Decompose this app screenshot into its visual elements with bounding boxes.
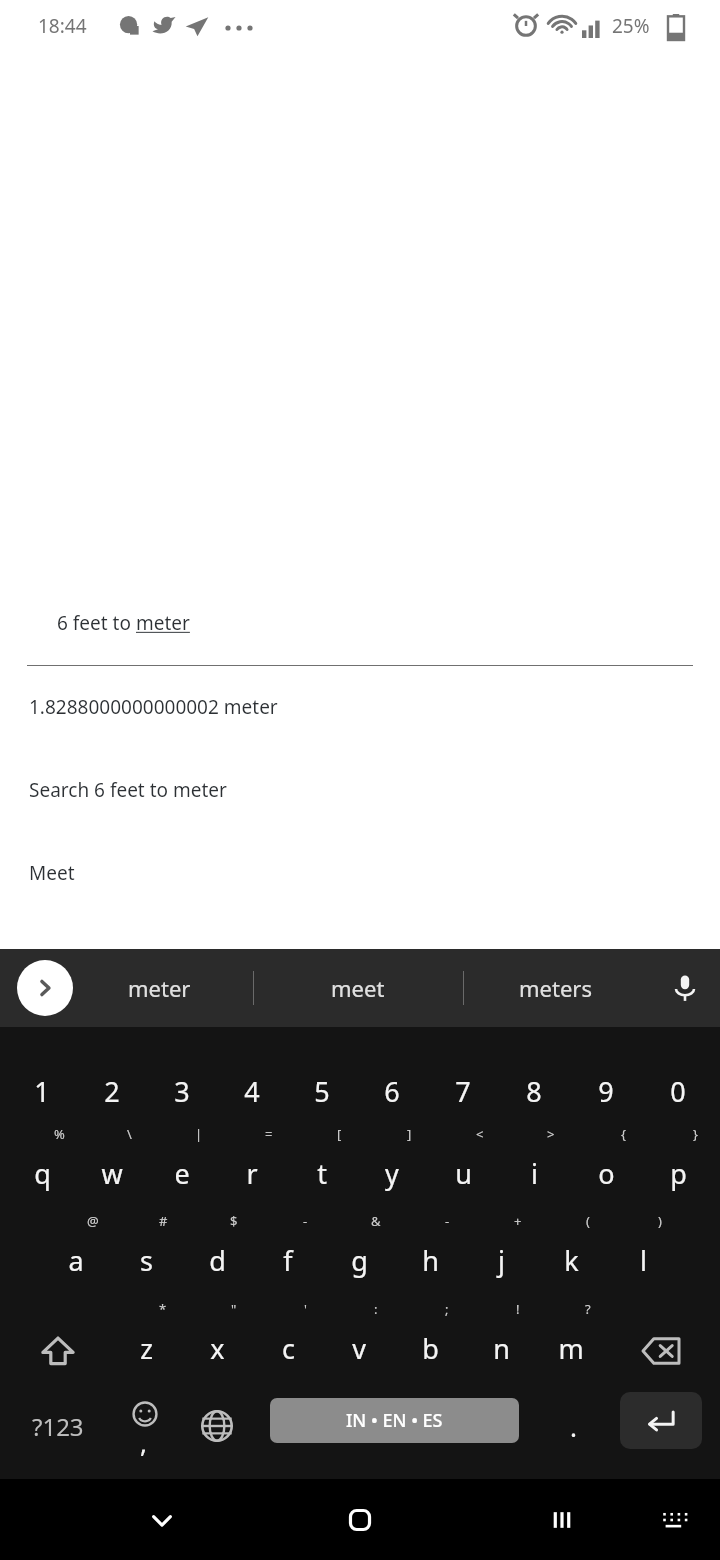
staticText: ] xyxy=(407,1125,412,1143)
button[interactable]: Keyboard switcher xyxy=(634,1479,714,1560)
button[interactable]: n xyxy=(466,1300,536,1384)
staticText: j xyxy=(498,1242,505,1279)
staticText: 1 xyxy=(34,1073,50,1110)
staticText: 2 xyxy=(104,1073,120,1110)
button[interactable]: 1.8288000000000002 meter xyxy=(29,694,278,720)
button[interactable]: m xyxy=(536,1300,606,1384)
button[interactable]: l xyxy=(608,1212,678,1296)
staticText: b xyxy=(422,1330,439,1367)
button[interactable]: meters xyxy=(470,949,640,1027)
staticText: z xyxy=(140,1330,153,1367)
button[interactable]: 3 xyxy=(147,1043,217,1127)
button[interactable]: Change language xyxy=(184,1393,250,1459)
staticText: ?123 xyxy=(32,1410,84,1443)
button[interactable]: meet xyxy=(273,949,443,1027)
button[interactable]: a xyxy=(41,1212,111,1296)
staticText: # xyxy=(159,1212,168,1230)
staticText: ; xyxy=(445,1300,449,1318)
button[interactable]: Emoji xyxy=(112,1393,180,1459)
button[interactable]: Hide keyboard xyxy=(120,1479,204,1560)
staticText: l xyxy=(640,1242,647,1279)
staticText: k xyxy=(564,1242,579,1279)
button[interactable]: IN • EN • ES xyxy=(270,1398,519,1443)
staticText: r xyxy=(246,1155,258,1192)
button[interactable]: 9 xyxy=(571,1043,641,1127)
staticText: meter xyxy=(128,973,191,1003)
button[interactable]: w xyxy=(77,1125,147,1209)
button[interactable]: Shift xyxy=(22,1315,94,1387)
button[interactable]: i xyxy=(499,1125,569,1209)
button[interactable]: ?123 xyxy=(20,1393,96,1459)
staticText: 0 xyxy=(670,1073,686,1110)
staticText: 18:44 xyxy=(38,13,87,39)
staticText: @ xyxy=(87,1212,99,1230)
staticText: m xyxy=(558,1330,584,1367)
staticText: Meet xyxy=(29,860,75,886)
staticText: : xyxy=(374,1300,378,1318)
staticText: . xyxy=(570,1409,577,1444)
button[interactable]: v xyxy=(324,1300,394,1384)
staticText: 6 feet to xyxy=(57,610,136,636)
button[interactable]: u xyxy=(428,1125,498,1209)
button[interactable]: 5 xyxy=(287,1043,357,1127)
button[interactable]: t xyxy=(287,1125,357,1209)
button[interactable]: y xyxy=(357,1125,427,1209)
button[interactable]: r xyxy=(217,1125,287,1209)
staticText: n xyxy=(493,1330,510,1367)
button[interactable]: 0 xyxy=(643,1043,713,1127)
button[interactable]: j xyxy=(466,1212,536,1296)
button[interactable]: 8 xyxy=(499,1043,569,1127)
staticText: q xyxy=(34,1155,51,1192)
staticText: - xyxy=(303,1212,308,1230)
staticText: { xyxy=(621,1125,626,1143)
button[interactable]: f xyxy=(253,1212,323,1296)
button[interactable]: p xyxy=(643,1125,713,1209)
button[interactable]: d xyxy=(182,1212,252,1296)
staticText: 3 xyxy=(174,1073,190,1110)
button[interactable]: Home xyxy=(318,1479,402,1560)
button[interactable]: Expand suggestions xyxy=(17,960,73,1016)
button[interactable]: z xyxy=(111,1300,181,1384)
button[interactable]: Enter xyxy=(620,1392,702,1449)
staticText: 6 xyxy=(384,1073,400,1110)
staticText: i xyxy=(531,1155,538,1192)
staticText: 5 xyxy=(314,1073,330,1110)
button[interactable]: g xyxy=(324,1212,394,1296)
button[interactable]: Search 6 feet to meter xyxy=(29,777,227,803)
button[interactable]: 6 xyxy=(357,1043,427,1127)
button[interactable]: q xyxy=(7,1125,77,1209)
staticText: } xyxy=(693,1125,698,1143)
staticText: ) xyxy=(658,1212,662,1230)
button[interactable]: 7 xyxy=(428,1043,498,1127)
button[interactable]: Meet xyxy=(29,860,75,886)
button[interactable]: 2 xyxy=(77,1043,147,1127)
staticText: " xyxy=(231,1300,237,1318)
staticText: 4 xyxy=(244,1073,260,1110)
staticText: < xyxy=(476,1125,484,1143)
staticText: y xyxy=(385,1155,399,1192)
button[interactable]: e xyxy=(147,1125,217,1209)
button[interactable]: Recent apps xyxy=(520,1479,604,1560)
staticText: h xyxy=(422,1242,439,1279)
staticText: f xyxy=(283,1242,293,1279)
button[interactable]: Backspace xyxy=(625,1315,697,1387)
staticText: \ xyxy=(127,1125,132,1143)
staticText: = xyxy=(265,1125,273,1143)
button[interactable]: 4 xyxy=(217,1043,287,1127)
button[interactable]: . xyxy=(540,1393,606,1459)
staticText: - xyxy=(445,1212,450,1230)
button[interactable]: x xyxy=(182,1300,252,1384)
button[interactable]: 6 feet to xyxy=(57,610,190,636)
button[interactable]: s xyxy=(111,1212,181,1296)
button[interactable]: meter xyxy=(74,949,244,1027)
button[interactable]: c xyxy=(253,1300,323,1384)
button[interactable]: 1 xyxy=(7,1043,77,1127)
button[interactable]: b xyxy=(395,1300,465,1384)
button[interactable]: Voice input xyxy=(650,949,720,1027)
button[interactable]: o xyxy=(571,1125,641,1209)
staticText: & xyxy=(371,1212,381,1230)
button[interactable]: k xyxy=(536,1212,606,1296)
staticText: e xyxy=(174,1155,190,1192)
staticText: u xyxy=(455,1155,472,1192)
button[interactable]: h xyxy=(395,1212,465,1296)
